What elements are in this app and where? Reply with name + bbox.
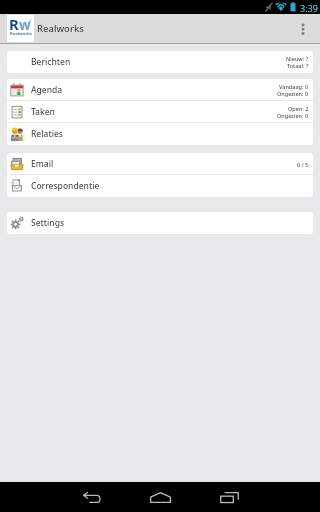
button[interactable]: Back — [70, 482, 114, 512]
button[interactable]: More options — [286, 14, 320, 43]
button[interactable]: Recent apps — [207, 482, 251, 512]
staticText: Taken — [31, 106, 55, 118]
button[interactable]: Correspondentie — [7, 175, 313, 197]
staticText: w — [19, 16, 31, 34]
staticText: Nieuw: ? — [286, 55, 309, 62]
button[interactable]: Settings — [7, 212, 313, 234]
button[interactable]: Home — [138, 482, 182, 512]
button[interactable]: Email — [7, 153, 313, 175]
staticText: Realworks — [37, 22, 84, 35]
staticText: Relaties — [31, 128, 63, 140]
staticText: Berichten — [31, 56, 71, 68]
staticText: Vandaag: 0 — [279, 83, 309, 90]
staticText: 0 / 5 — [297, 161, 309, 168]
staticText: Settings — [31, 217, 65, 229]
staticText: Ongezien: 0 — [277, 90, 309, 97]
staticText: Agenda — [31, 84, 63, 96]
staticText: R — [9, 14, 19, 34]
button[interactable]: Taken — [7, 101, 313, 123]
staticText: Email — [31, 158, 54, 170]
staticText: 3:39 — [300, 2, 318, 14]
staticText: Correspondentie — [31, 180, 100, 192]
staticText: Ongezien: 0 — [277, 112, 309, 119]
button[interactable]: Agenda — [7, 79, 313, 101]
staticText: Open: 2 — [288, 105, 309, 112]
staticText: Totaal: ? — [287, 62, 309, 69]
staticText: Realworks — [10, 31, 32, 37]
button[interactable]: Relaties — [7, 123, 313, 145]
button[interactable]: Berichten — [7, 51, 313, 73]
